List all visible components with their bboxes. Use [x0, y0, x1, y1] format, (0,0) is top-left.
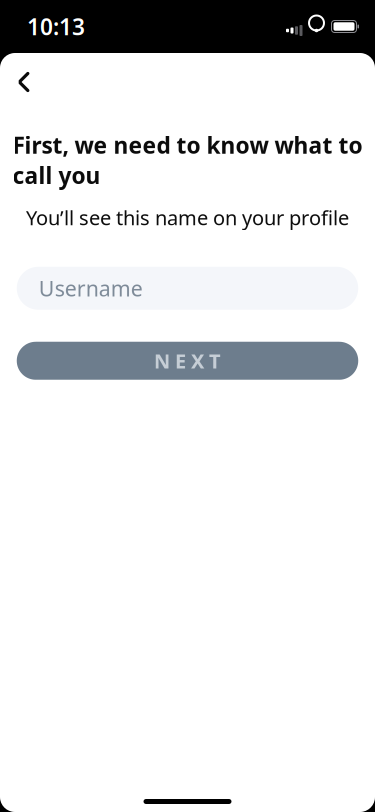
- button[interactable]: Back: [2, 60, 46, 104]
- staticText: First, we need to know what to call you: [12, 130, 362, 190]
- staticText: Username: [39, 274, 143, 302]
- staticText: You’ll see this name on your profile: [26, 204, 349, 231]
- staticText: 10:13: [27, 11, 85, 41]
- button[interactable]: N E X T: [17, 342, 358, 380]
- staticText: N E X T: [154, 347, 221, 374]
